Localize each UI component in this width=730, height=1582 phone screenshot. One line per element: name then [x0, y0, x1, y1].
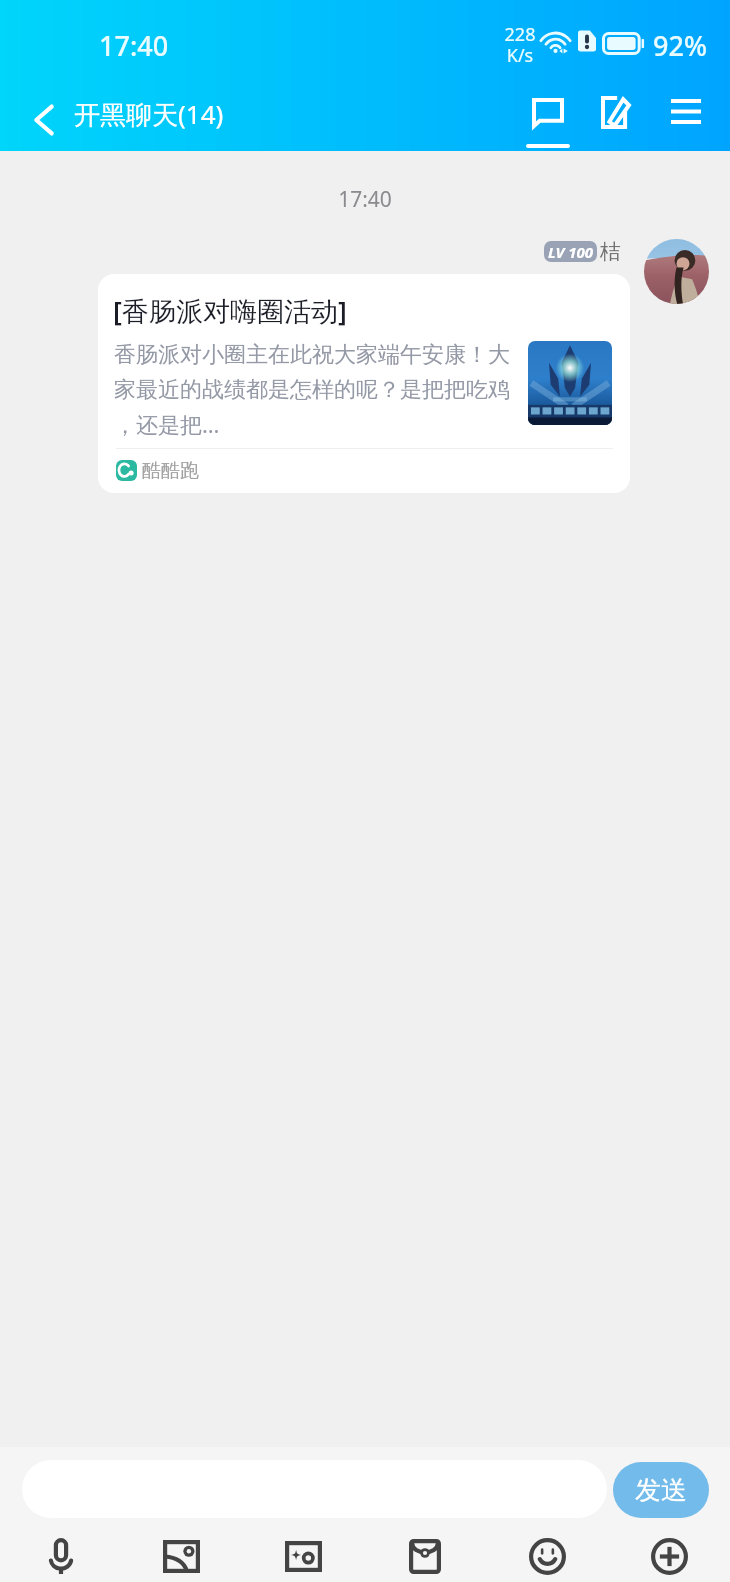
staticText: 17:40	[99, 27, 169, 64]
staticText: 228 K/s	[504, 22, 536, 68]
staticText: [香肠派对嗨圈活动]	[113, 292, 347, 329]
button[interactable]: More	[608, 1530, 730, 1582]
staticText: 17:40	[0, 185, 730, 214]
button[interactable]: Emoji	[486, 1530, 608, 1582]
button[interactable]: Sticker	[242, 1530, 364, 1582]
staticText: LV 100	[548, 242, 594, 262]
button[interactable]: Avatar	[644, 239, 709, 304]
staticText: 香肠派对小圈主在此祝大家端午安康！大 家最近的战绩都是怎样的呢？是把把吃鸡 ，还…	[114, 341, 538, 440]
button[interactable]: Voice message	[0, 1530, 121, 1582]
button[interactable]: 发送	[613, 1462, 709, 1518]
staticText: 92%	[653, 27, 707, 64]
staticText: 酷酷跑	[142, 459, 199, 483]
button[interactable]: Photo	[121, 1530, 242, 1582]
button[interactable]: Menu	[650, 88, 720, 151]
button[interactable]: [香肠派对嗨圈活动]	[98, 274, 630, 493]
staticText: 发送	[635, 1474, 687, 1507]
staticText: 桔	[600, 239, 621, 265]
button[interactable]: Back	[14, 88, 74, 151]
button[interactable]: Red packet	[364, 1530, 486, 1582]
button[interactable]: Compose	[586, 88, 646, 151]
button[interactable]: Chat	[512, 88, 584, 151]
staticText: 开黑聊天(14)	[74, 96, 224, 132]
